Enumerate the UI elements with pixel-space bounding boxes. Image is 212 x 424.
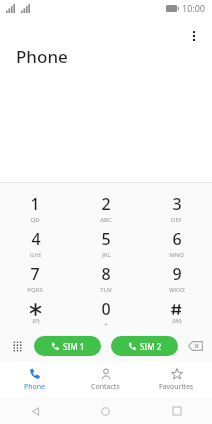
button[interactable]: 3: [141, 191, 212, 226]
staticText: SIM 2: [140, 341, 162, 352]
button[interactable]: Dialpad: [0, 335, 34, 357]
staticText: 4: [31, 228, 41, 250]
staticText: 8: [101, 263, 111, 285]
staticText: 5: [101, 228, 111, 250]
button[interactable]: More options: [182, 24, 206, 48]
staticText: JKL: [102, 251, 111, 259]
staticText: 0: [101, 298, 111, 320]
staticText: 1: [30, 193, 40, 215]
button[interactable]: SIM 1: [34, 336, 101, 356]
staticText: SIM 1: [63, 341, 85, 352]
staticText: (W): [172, 317, 182, 325]
button[interactable]: 8: [70, 261, 141, 296]
button[interactable]: 1: [0, 191, 70, 226]
button[interactable]: Back: [0, 398, 70, 424]
button[interactable]: Backspace: [178, 335, 212, 357]
button[interactable]: (W): [141, 296, 212, 331]
button[interactable]: Recents: [141, 398, 212, 424]
staticText: Favourites: [159, 382, 194, 392]
staticText: 9: [172, 263, 182, 285]
staticText: MNO: [169, 251, 184, 259]
button[interactable]: 5: [70, 226, 141, 261]
button[interactable]: 2: [70, 191, 141, 226]
button[interactable]: 9: [141, 261, 212, 296]
staticText: WXYZ: [169, 286, 185, 294]
staticText: Phone: [24, 382, 46, 392]
staticText: TUV: [100, 286, 112, 294]
button[interactable]: Contacts: [70, 362, 141, 398]
staticText: 10:00: [182, 2, 206, 14]
button[interactable]: SIM 2: [111, 336, 178, 356]
button[interactable]: 6: [141, 226, 212, 261]
staticText: GHI: [30, 251, 41, 259]
staticText: 7: [30, 263, 40, 285]
button[interactable]: Home: [70, 398, 141, 424]
button[interactable]: Favourites: [141, 362, 212, 398]
staticText: 6: [172, 228, 182, 250]
button[interactable]: 7: [0, 261, 70, 296]
staticText: 2: [101, 193, 111, 215]
staticText: 3: [172, 193, 182, 215]
staticText: Contacts: [91, 382, 120, 392]
staticText: QD: [30, 216, 40, 224]
staticText: DEF: [171, 216, 182, 224]
staticText: Phone: [16, 45, 68, 68]
staticText: PQRS: [27, 286, 43, 294]
button[interactable]: (P): [0, 296, 70, 331]
staticText: (P): [32, 317, 40, 325]
button[interactable]: 0: [70, 296, 141, 331]
staticText: +: [104, 321, 108, 329]
staticText: ABC: [100, 216, 112, 224]
button[interactable]: 4: [0, 226, 70, 261]
button[interactable]: Phone: [0, 362, 70, 398]
